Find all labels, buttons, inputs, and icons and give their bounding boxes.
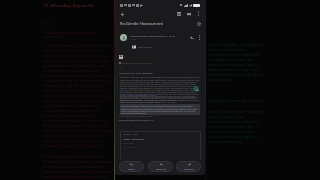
staticText: The following is a transcript of the con… [43, 31, 113, 39]
staticText: Dear Sir or Madam, I am writing to expre… [43, 43, 113, 148]
staticText: 19- WhatsApp Bypass V6 is an internal re… [43, 154, 113, 180]
staticText: https://support.thirdsupport.co/case [120, 94, 156, 97]
staticText: Re:Gentle Harassment [120, 21, 163, 27]
staticText: I am writing [123, 146, 135, 149]
staticText: Re:Gentle Harassment V6 [122, 61, 152, 64]
staticText: Please find the attached summary of the … [119, 101, 176, 104]
staticText: Hello [43, 21, 51, 25]
button[interactable]: Star [194, 19, 203, 28]
button[interactable]: Reply all [148, 161, 173, 172]
staticText: Dear Sir or Madam, I am writing to expre… [208, 42, 264, 82]
staticText: Gentle Harassment [123, 138, 144, 141]
staticText: Dear Sir or Madam, I am writing to expre… [120, 76, 202, 101]
button[interactable]: On Tue, 14 Mar [123, 133, 198, 162]
staticText: Thank you for your message. [119, 71, 154, 74]
button[interactable]: Archive [174, 9, 183, 18]
button[interactable]: More [196, 34, 203, 41]
staticText: On Tue, 14 Mar [123, 133, 138, 136]
button[interactable]: Reply [188, 34, 196, 42]
staticText: Kind regards, the support team [119, 115, 153, 118]
staticText: Block images [138, 46, 153, 49]
button[interactable]: Back [117, 9, 127, 19]
button[interactable]: More options [194, 9, 203, 18]
staticText: supportmagent.thirdsupport.co 11:38 [130, 34, 176, 37]
staticText: 19- WhatsApp Bypass V6 [43, 3, 94, 9]
staticText: supportmagent.thirdsupport.co [119, 119, 154, 122]
staticText: Dear Sir or Madam, I am writing to expre… [120, 96, 202, 103]
button[interactable]: Reply [119, 161, 144, 172]
button[interactable]: Forward [176, 161, 201, 172]
staticText: to me [130, 38, 137, 41]
staticText: Reply [128, 167, 135, 170]
staticText: Hi, [119, 66, 123, 69]
staticText: Hello again, [123, 142, 135, 145]
button[interactable]: Delete [184, 9, 193, 18]
staticText: Reply all [156, 167, 166, 170]
staticText: Dear Sir or Madam, I am writing to expre… [121, 105, 199, 114]
staticText: Dear Sir or Madam, I am writing to expre… [208, 109, 264, 144]
staticText: Forward [184, 167, 194, 170]
staticText: No further response was received. [208, 98, 263, 103]
